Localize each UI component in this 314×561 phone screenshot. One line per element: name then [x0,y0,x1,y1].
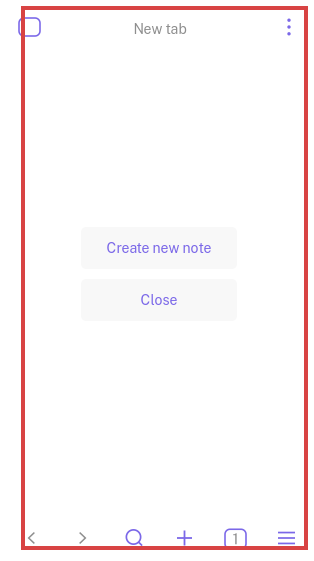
button[interactable]: Close [81,279,237,321]
staticText: New tab [133,21,186,37]
button[interactable]: New tab [159,530,210,545]
button[interactable]: Back [6,532,57,544]
button[interactable]: Search [108,529,159,547]
button[interactable]: Forward [57,532,108,544]
staticText: Create new note [106,240,211,256]
button[interactable]: More options [275,10,303,44]
button[interactable]: Create new note [81,227,237,269]
button[interactable]: Tabs [10,10,49,44]
button[interactable]: Menu [261,532,312,544]
button[interactable]: Show open tabs [210,528,261,548]
staticText: Close [140,292,177,308]
staticText: 1 [232,530,238,548]
